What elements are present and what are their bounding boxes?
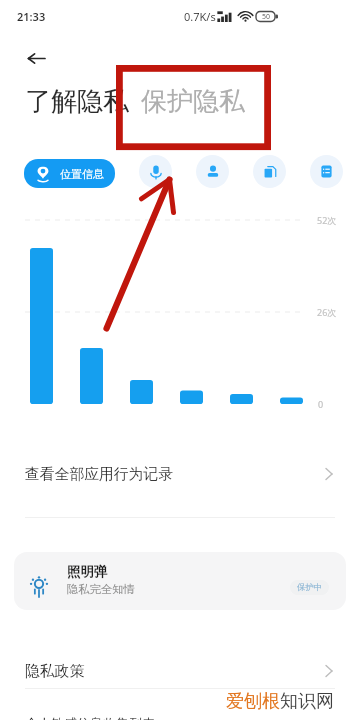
staticText: 21:33 [17,9,46,24]
staticText: 隐私完全知情 [67,582,135,596]
staticText: 26次 [317,306,337,318]
staticText: 0.7K/s [184,9,216,24]
staticText: 位置信息 [60,167,104,181]
staticText: 隐私政策 [25,662,85,681]
staticText: 爱刨根 [226,690,280,713]
staticText: 0 [318,398,324,410]
staticText: 个人敏感信息收集列表 [25,715,155,720]
button[interactable]: Files [253,155,286,188]
button[interactable]: 查看全部应用行为记录 [0,458,360,490]
button[interactable]: Contacts [196,155,229,188]
button[interactable]: 位置信息 [24,159,115,188]
button[interactable]: 了解隐私 [25,85,129,118]
button[interactable]: Microphone [139,155,172,188]
button[interactable]: 隐私政策 [0,655,360,687]
staticText: 52次 [317,214,337,226]
staticText: 保护中 [297,582,323,593]
staticText: 照明弹 [67,563,108,580]
button[interactable]: 照明弹 [14,552,346,610]
button[interactable]: 保护隐私 [141,85,245,118]
staticText: 50 [262,12,271,22]
button[interactable]: Back [22,44,50,72]
staticText: 知识网 [280,690,334,713]
button[interactable]: Notes [310,155,343,188]
staticText: 查看全部应用行为记录 [25,465,173,484]
